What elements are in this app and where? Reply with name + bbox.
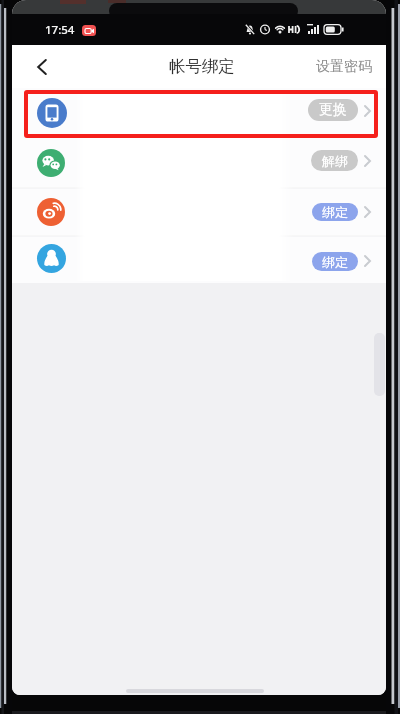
- staticText: 解绑: [322, 153, 348, 169]
- button[interactable]: 更换: [308, 99, 358, 121]
- button[interactable]: 绑定: [312, 203, 358, 221]
- staticText: 绑定: [322, 254, 348, 270]
- button[interactable]: [12, 188, 386, 236]
- button[interactable]: [28, 53, 56, 81]
- button[interactable]: 解绑: [311, 150, 358, 171]
- button[interactable]: [12, 236, 386, 283]
- button[interactable]: [12, 141, 386, 188]
- button[interactable]: 设置密码: [316, 58, 372, 76]
- staticText: 更换: [319, 101, 347, 119]
- button[interactable]: 绑定: [312, 252, 358, 271]
- button[interactable]: [12, 88, 386, 141]
- staticText: 17:54: [45, 22, 75, 38]
- staticText: 设置密码: [316, 58, 372, 76]
- staticText: 帐号绑定: [169, 56, 235, 77]
- staticText: 绑定: [322, 204, 348, 220]
